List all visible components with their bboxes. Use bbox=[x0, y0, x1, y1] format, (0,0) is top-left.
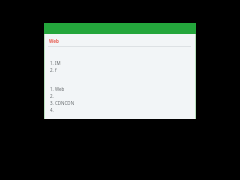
staticText: Web bbox=[49, 38, 59, 44]
staticText: 1. IM bbox=[50, 60, 61, 66]
staticText: 2. f bbox=[50, 67, 57, 73]
staticText: 1. Web bbox=[50, 86, 65, 92]
staticText: 4. bbox=[50, 107, 54, 113]
staticText: 2. bbox=[50, 93, 54, 99]
staticText: 3. CDNCDN bbox=[50, 100, 75, 106]
